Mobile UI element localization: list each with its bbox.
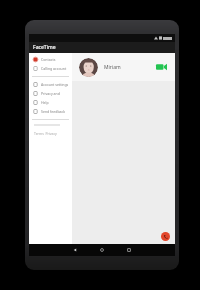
- other: Contact photo: [79, 58, 98, 77]
- button[interactable]: Back: [67, 244, 83, 256]
- staticText: Send feedback: [41, 109, 66, 114]
- button[interactable]: Send feedback: [29, 107, 72, 116]
- staticText: Miriam: [104, 64, 153, 71]
- staticText: Help: [41, 100, 49, 105]
- button[interactable]: Recent apps: [121, 244, 137, 256]
- staticText: Contacts: [41, 57, 56, 62]
- button[interactable]: Contact photo: [72, 53, 175, 81]
- button[interactable]: Help: [29, 98, 72, 107]
- button[interactable]: Calling account: [29, 64, 72, 73]
- button[interactable]: New call: [161, 232, 170, 241]
- staticText: Calling account: [41, 66, 67, 71]
- staticText: Privacy and security: [41, 91, 70, 96]
- button[interactable]: Account settings: [29, 80, 72, 89]
- button[interactable]: Home: [94, 244, 110, 256]
- staticText: Account settings: [41, 82, 69, 87]
- button[interactable]: Contacts: [29, 55, 72, 64]
- button[interactable]: [29, 123, 72, 127]
- staticText: FaceTime: [33, 44, 56, 51]
- button[interactable]: Video call Miriam: [153, 59, 169, 75]
- button[interactable]: Privacy and security: [29, 89, 72, 98]
- button[interactable]: Terms Privacy: [29, 131, 72, 136]
- staticText: Terms Privacy: [34, 131, 57, 136]
